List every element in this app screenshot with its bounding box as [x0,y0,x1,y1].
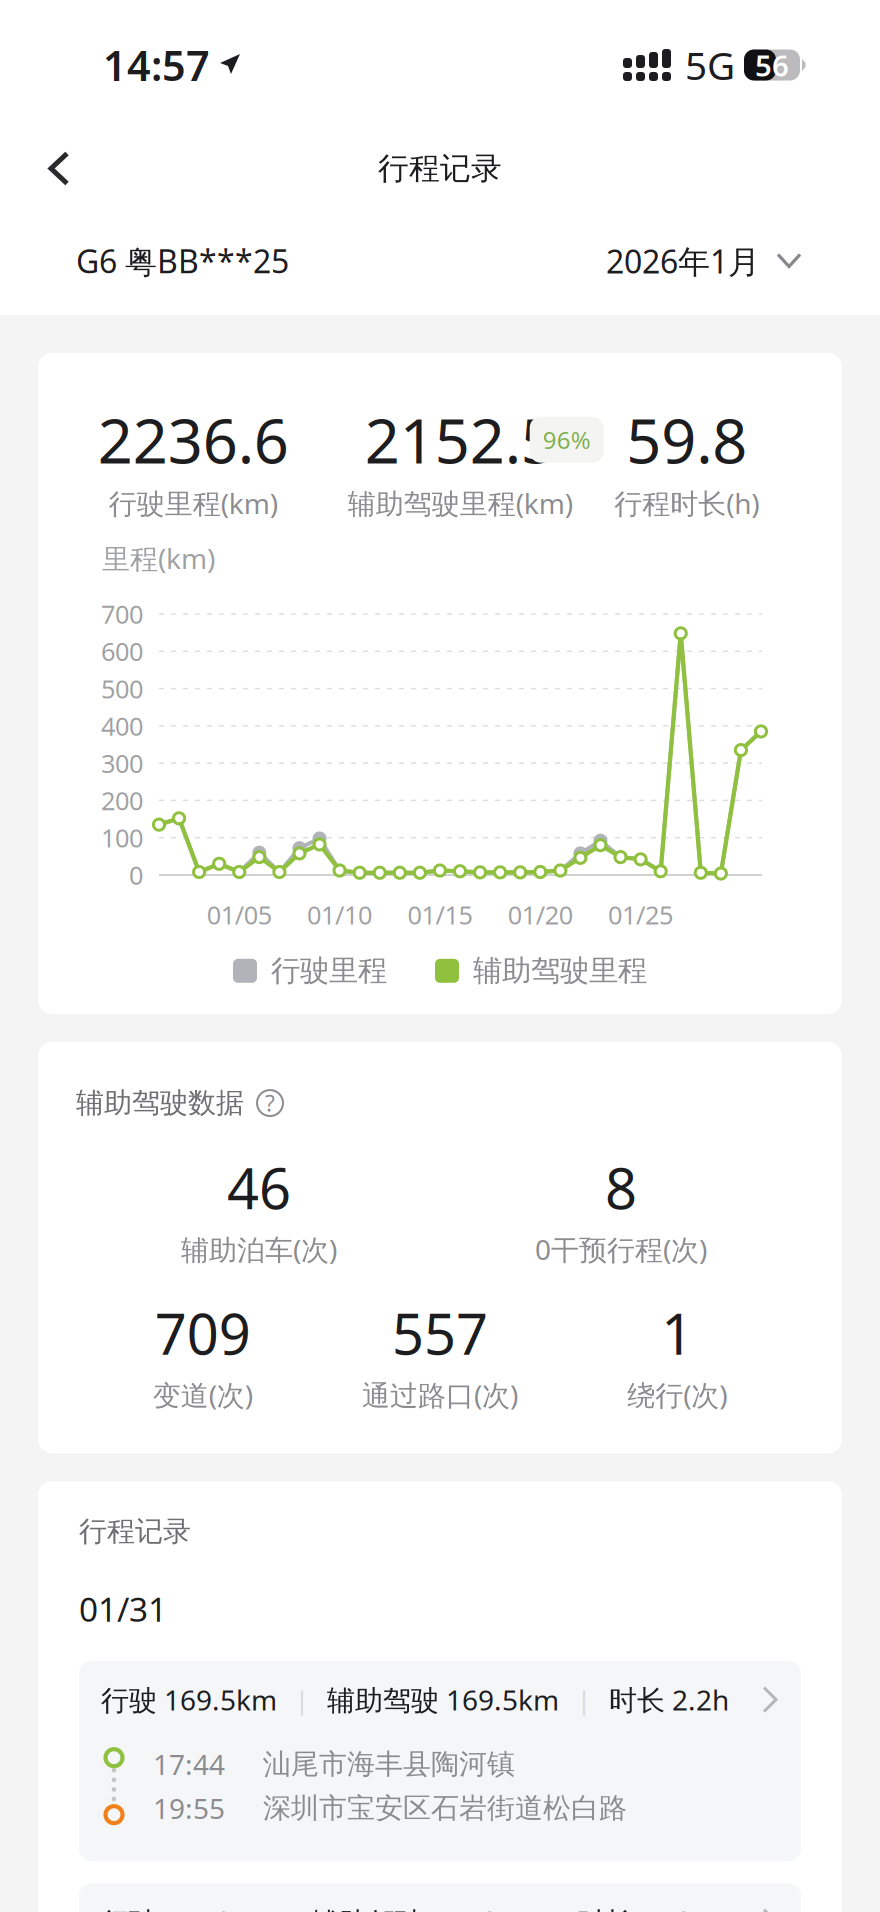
staticText: 557 [392,1296,488,1370]
staticText: 0 [129,858,143,892]
staticText: 行驶 88.2km [101,1903,261,1912]
staticText: 0干预行程(次) [535,1231,707,1268]
staticText: 行驶里程(km) [109,484,278,522]
staticText: | [577,1683,591,1716]
staticText: 59.8 [626,399,747,480]
staticText: 01/15 [407,898,472,931]
staticText: 700 [101,597,143,631]
staticText: 01/20 [508,898,573,931]
staticText: 行程记录 [378,150,502,187]
staticText: 行驶里程 [271,953,387,989]
staticText: 56 [755,45,789,84]
staticText: 17:44 [153,1746,225,1783]
staticText: 里程(km) [102,540,215,577]
staticText: 2152.5 [365,399,556,480]
staticText: 通过路口(次) [362,1376,518,1413]
staticText: 96% [543,424,591,456]
staticText: ? [265,1088,275,1118]
staticText: 46 [227,1150,291,1225]
staticText: 8 [605,1150,637,1225]
staticText: 辅助驾驶 169.5km [327,1681,559,1718]
staticText: 辅助驾驶里程 [473,953,647,989]
button[interactable]: 说明 [256,1089,284,1117]
staticText: 01/25 [608,898,673,931]
button[interactable]: 返回 [0,131,98,205]
staticText: 200 [101,784,143,817]
staticText: | [295,1683,309,1716]
staticText: 600 [101,634,143,668]
staticText: 1 [661,1296,693,1370]
staticText: 300 [101,746,143,780]
staticText: 400 [101,709,143,743]
staticText: 100 [101,821,143,854]
staticText: G6 粤BB***25 [76,240,289,282]
staticText: 2236.6 [98,399,289,480]
staticText: 709 [155,1296,251,1370]
button[interactable]: 行驶 169.5km [79,1661,801,1861]
staticText: 时长 2.2h [609,1681,729,1718]
staticText: 时长 1.5h [577,1903,697,1912]
staticText: 19:55 [153,1790,225,1827]
staticText: 汕尾市海丰县陶河镇 [263,1747,515,1781]
staticText: 绕行(次) [627,1376,727,1413]
staticText: 01/31 [79,1587,167,1631]
staticText: 辅助泊车(次) [181,1231,337,1268]
button[interactable]: 2026年1月 [606,240,802,282]
staticText: 14:57 [103,38,210,92]
staticText: 01/05 [207,898,272,931]
staticText: 变道(次) [153,1376,253,1413]
staticText: 辅助驾驶 88.2km [311,1903,527,1912]
staticText: 辅助驾驶数据 [76,1086,244,1120]
staticText: 辅助驾驶里程(km) [348,484,573,522]
staticText: 2026年1月 [606,240,760,282]
staticText: 行程时长(h) [614,484,759,522]
staticText: 5G [685,39,735,91]
staticText: 行驶 169.5km [101,1681,277,1718]
button[interactable]: 行驶 88.2km [79,1883,801,1912]
staticText: 行程记录 [79,1514,191,1549]
staticText: 01/10 [307,898,372,931]
staticText: 500 [101,672,143,705]
staticText: 深圳市宝安区石岩街道松白路 [263,1791,627,1825]
